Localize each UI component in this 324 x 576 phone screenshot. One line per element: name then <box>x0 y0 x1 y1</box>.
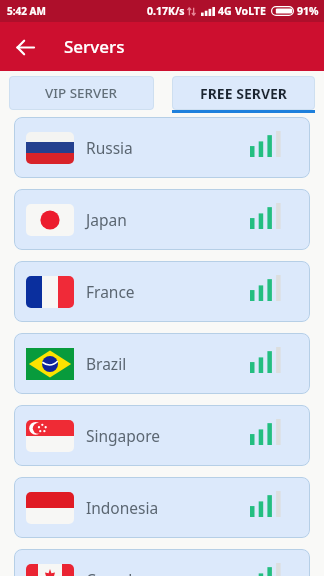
staticText: 4G <box>218 4 232 18</box>
staticText: Canada <box>86 569 141 576</box>
button[interactable]: Singapore <box>14 405 310 466</box>
staticText: Brazil <box>86 353 127 374</box>
staticText: 5:42 AM <box>7 4 46 18</box>
staticText: Indonesia <box>86 497 159 518</box>
staticText: Servers <box>64 35 125 58</box>
staticText: France <box>86 281 135 302</box>
button[interactable]: Canada <box>14 549 310 576</box>
staticText: VoLTE <box>235 4 266 18</box>
staticText: Singapore <box>86 425 161 446</box>
button[interactable]: Indonesia <box>14 477 310 538</box>
staticText: VIP SERVER <box>45 84 118 102</box>
button[interactable]: France <box>14 261 310 322</box>
staticText: Russia <box>86 137 133 158</box>
staticText: Japan <box>86 209 127 230</box>
button[interactable]: VIP SERVER <box>9 76 154 110</box>
staticText: FREE SERVER <box>200 84 288 103</box>
button[interactable]: FREE SERVER <box>172 76 315 113</box>
button[interactable]: Japan <box>14 189 310 250</box>
button[interactable]: Brazil <box>14 333 310 394</box>
staticText: 91% <box>297 4 319 18</box>
button[interactable]: Back <box>10 32 40 62</box>
button[interactable]: Russia <box>14 117 310 178</box>
staticText: 0.17K/s <box>147 4 185 18</box>
